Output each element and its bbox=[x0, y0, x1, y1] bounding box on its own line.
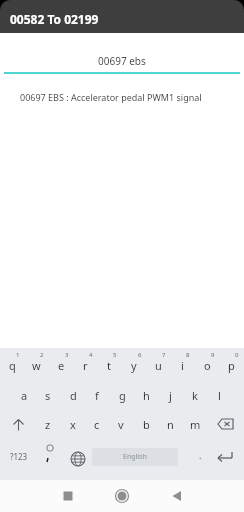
button[interactable] bbox=[212, 444, 238, 468]
button[interactable]: f bbox=[85, 384, 109, 406]
button[interactable]: a bbox=[12, 384, 36, 406]
staticText: a bbox=[21, 388, 28, 403]
staticText: v bbox=[118, 417, 124, 432]
button[interactable] bbox=[36, 442, 60, 468]
staticText: p bbox=[228, 358, 235, 373]
button[interactable] bbox=[6, 413, 32, 435]
button[interactable]: d bbox=[61, 384, 85, 406]
staticText: c bbox=[94, 417, 100, 432]
staticText: 4 bbox=[89, 351, 93, 359]
staticText: s bbox=[45, 388, 51, 403]
button[interactable]: b bbox=[134, 413, 158, 435]
button[interactable] bbox=[167, 486, 187, 506]
button[interactable] bbox=[58, 486, 78, 506]
staticText: 3 bbox=[65, 351, 69, 359]
staticText: y bbox=[131, 358, 137, 373]
staticText: 1 bbox=[16, 351, 20, 359]
button[interactable]: p bbox=[219, 354, 243, 376]
button[interactable]: 00582 To 02199 bbox=[0, 0, 244, 33]
staticText: j bbox=[169, 388, 172, 403]
button[interactable]: x bbox=[61, 413, 85, 435]
button[interactable]: w bbox=[24, 354, 48, 376]
staticText: 00697 ebs bbox=[98, 54, 146, 68]
staticText: m bbox=[190, 417, 201, 432]
staticText: 6 bbox=[138, 351, 142, 359]
button[interactable]: 00697 ebs bbox=[4, 48, 240, 74]
button[interactable]: k bbox=[183, 384, 207, 406]
staticText: g bbox=[119, 388, 126, 403]
button[interactable]: s bbox=[36, 384, 60, 406]
staticText: z bbox=[45, 417, 51, 432]
staticText: f bbox=[95, 388, 99, 403]
staticText: h bbox=[143, 388, 150, 403]
staticText: ?123 bbox=[10, 451, 28, 462]
button[interactable]: z bbox=[36, 413, 60, 435]
staticText: . bbox=[199, 449, 202, 461]
button[interactable]: i bbox=[170, 354, 194, 376]
staticText: 0 bbox=[235, 351, 239, 359]
staticText: 00697 EBS : Accelerator pedal PWM1 signa… bbox=[20, 91, 202, 103]
button[interactable]: y bbox=[122, 354, 146, 376]
staticText: k bbox=[192, 388, 198, 403]
button[interactable]: 00697 EBS : Accelerator pedal PWM1 signa… bbox=[0, 88, 244, 106]
staticText: r bbox=[83, 358, 88, 373]
staticText: i bbox=[181, 358, 184, 373]
staticText: 5 bbox=[113, 351, 117, 359]
button[interactable] bbox=[64, 446, 92, 470]
staticText: 00582 To 02199 bbox=[10, 11, 99, 27]
button[interactable] bbox=[112, 486, 132, 506]
staticText: o bbox=[204, 358, 211, 373]
button[interactable]: c bbox=[85, 413, 109, 435]
staticText: English bbox=[123, 452, 147, 462]
button[interactable]: r bbox=[73, 354, 97, 376]
staticText: n bbox=[167, 417, 174, 432]
button[interactable]: t bbox=[97, 354, 121, 376]
staticText: u bbox=[155, 358, 162, 373]
button[interactable]: v bbox=[109, 413, 133, 435]
button[interactable]: j bbox=[158, 384, 182, 406]
staticText: t bbox=[107, 358, 111, 373]
staticText: x bbox=[70, 417, 76, 432]
staticText: d bbox=[70, 388, 77, 403]
button[interactable]: q bbox=[0, 354, 24, 376]
staticText: e bbox=[58, 358, 65, 373]
button[interactable]: o bbox=[195, 354, 219, 376]
button[interactable] bbox=[212, 413, 238, 435]
button[interactable]: English bbox=[92, 448, 178, 466]
button[interactable]: e bbox=[49, 354, 73, 376]
staticText: 2 bbox=[40, 351, 44, 359]
staticText: b bbox=[143, 417, 150, 432]
staticText: 8 bbox=[186, 351, 190, 359]
button[interactable]: g bbox=[110, 384, 134, 406]
staticText: w bbox=[32, 358, 41, 373]
staticText: 9 bbox=[211, 351, 215, 359]
button[interactable]: u bbox=[146, 354, 170, 376]
button[interactable]: l bbox=[207, 384, 231, 406]
button[interactable]: m bbox=[183, 413, 207, 435]
staticText: 7 bbox=[162, 351, 166, 359]
button[interactable]: n bbox=[158, 413, 182, 435]
button[interactable]: h bbox=[134, 384, 158, 406]
staticText: l bbox=[218, 388, 221, 403]
staticText: q bbox=[9, 358, 16, 373]
